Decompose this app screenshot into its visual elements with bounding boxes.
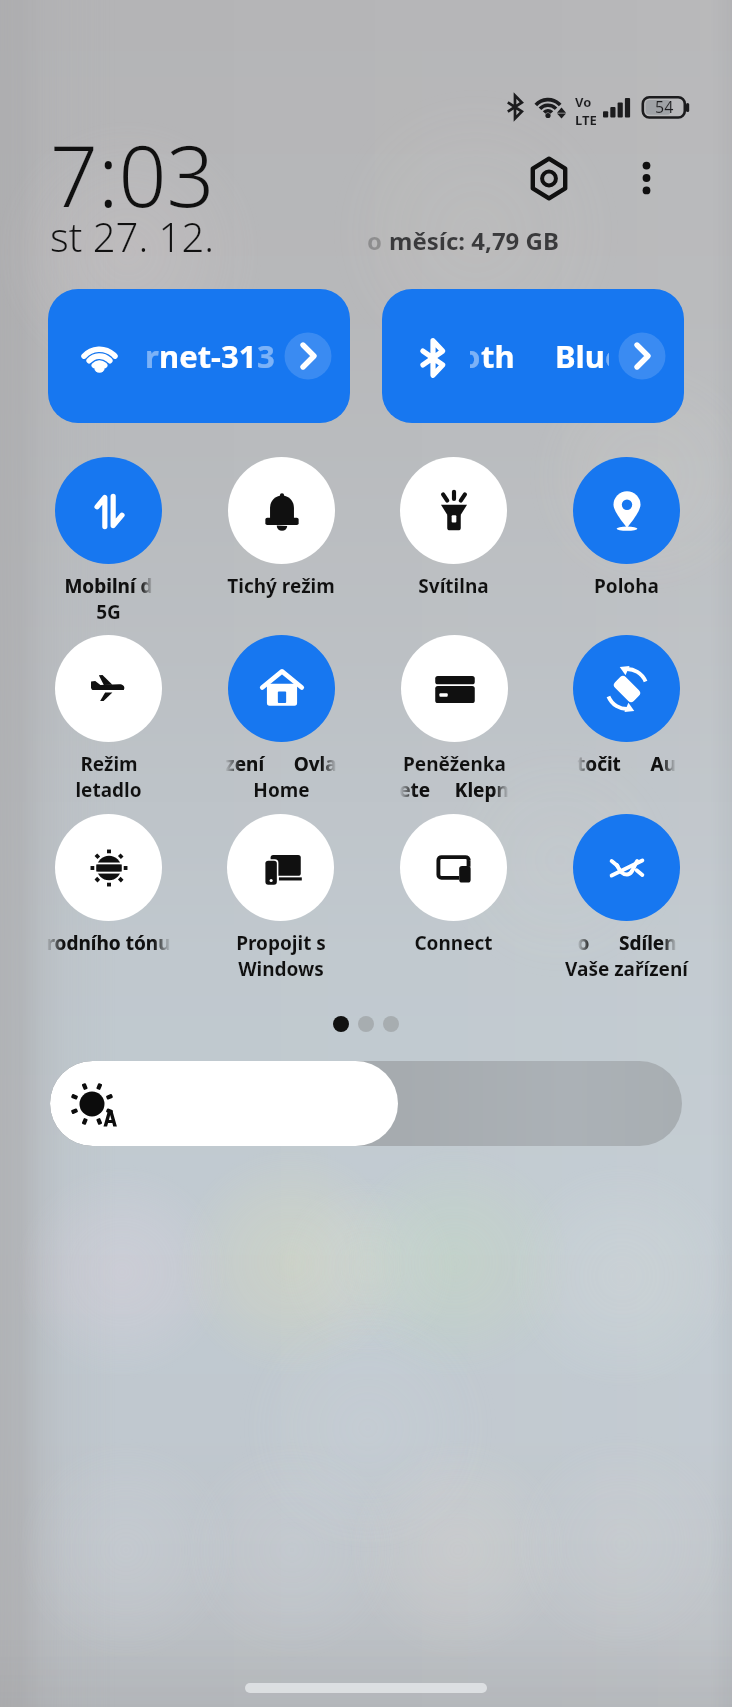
staticText: Vaše zařízení [565, 956, 688, 982]
staticText: Propojit s [236, 930, 326, 956]
staticText: Mobilní d [64, 573, 153, 599]
staticText: 3 [257, 335, 275, 377]
staticText: Poloha [594, 573, 659, 599]
staticText: Connect [414, 930, 493, 956]
staticText: 7:03 [50, 117, 215, 231]
staticText: LTE [575, 111, 597, 129]
button[interactable]: Peněženka [367, 635, 540, 811]
button[interactable]: Connect [367, 814, 540, 990]
staticText: zení Ovla [225, 751, 337, 777]
staticText: 5G [96, 599, 121, 625]
button[interactable]: Automaticky otočit [540, 635, 713, 811]
staticText: 54 [655, 96, 674, 118]
staticText: Režim [80, 751, 138, 777]
button[interactable]: Režim letadlo [22, 635, 195, 811]
staticText: Vo [575, 93, 592, 111]
button[interactable]: r [48, 289, 350, 423]
button[interactable]: Propojit s Windows [194, 814, 367, 990]
button[interactable]: Ovládání Home [194, 635, 367, 811]
staticText: letadlo [75, 777, 142, 803]
staticText: o [470, 335, 481, 377]
button[interactable]: Tichý režim [194, 457, 367, 633]
button[interactable]: Page 1 [333, 1016, 349, 1032]
button[interactable]: More options [622, 155, 668, 201]
staticText: Windows [238, 956, 324, 982]
button[interactable]: Sdílení Vaše zařízení [540, 814, 713, 990]
staticText: o [367, 224, 389, 257]
button[interactable]: Page 2 [358, 1016, 374, 1032]
button[interactable]: Poloha [540, 457, 713, 633]
staticText: net-31 [159, 335, 257, 377]
button[interactable]: o [382, 289, 684, 423]
staticText: o Sdílen [577, 930, 677, 956]
staticText: Home [253, 777, 310, 803]
staticText: Svítilna [418, 573, 489, 599]
staticText: e [605, 335, 609, 377]
button[interactable]: Brightness [50, 1061, 682, 1146]
staticText: rodního tónu [46, 930, 171, 956]
staticText: th Blu [481, 335, 605, 377]
button[interactable]: Mobilní data [22, 457, 195, 633]
staticText: st 27. 12. [50, 209, 214, 263]
button[interactable]: Page 3 [383, 1016, 399, 1032]
button[interactable]: Settings [513, 143, 585, 215]
staticText: ete Klepn [399, 777, 509, 803]
staticText: točit Au [577, 751, 676, 777]
staticText: Peněženka [403, 751, 506, 777]
staticText: měsíc: 4,79 GB [389, 224, 559, 257]
button[interactable]: Svítilna [367, 457, 540, 633]
staticText: Tichý režim [227, 573, 335, 599]
button[interactable]: Přirozený tón [22, 814, 195, 990]
staticText: r [145, 335, 159, 377]
